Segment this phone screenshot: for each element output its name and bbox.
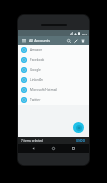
button[interactable]: Open navigation menu bbox=[21, 38, 27, 44]
staticText: 7 items selected bbox=[21, 139, 43, 143]
staticText: Google bbox=[30, 68, 41, 72]
staticText: UNDO bbox=[76, 139, 85, 143]
staticText: LinkedIn bbox=[30, 78, 43, 82]
button[interactable]: Home bbox=[49, 144, 58, 153]
button[interactable]: LinkedIn bbox=[18, 75, 89, 85]
staticText: Twitter bbox=[30, 98, 41, 102]
staticText: Amazon bbox=[30, 48, 43, 52]
button[interactable]: UNDO bbox=[75, 139, 86, 143]
button[interactable]: Back bbox=[29, 144, 38, 153]
button[interactable]: Add account bbox=[73, 122, 84, 133]
button[interactable]: Twitter bbox=[18, 95, 89, 105]
button[interactable]: Facebook bbox=[18, 55, 89, 65]
button[interactable]: Recent apps bbox=[69, 144, 78, 153]
button[interactable]: Search bbox=[65, 37, 72, 44]
button[interactable]: Edit bbox=[72, 37, 79, 44]
button[interactable]: Amazon bbox=[18, 45, 89, 55]
staticText: All Accounts bbox=[29, 38, 50, 43]
button[interactable]: Delete bbox=[79, 37, 86, 44]
staticText: 9:14 bbox=[82, 32, 87, 35]
staticText: Microsoft/Hotmail bbox=[30, 88, 58, 92]
button[interactable]: Google bbox=[18, 65, 89, 75]
staticText: Facebook bbox=[30, 58, 45, 62]
button[interactable]: Microsoft/Hotmail bbox=[18, 85, 89, 95]
